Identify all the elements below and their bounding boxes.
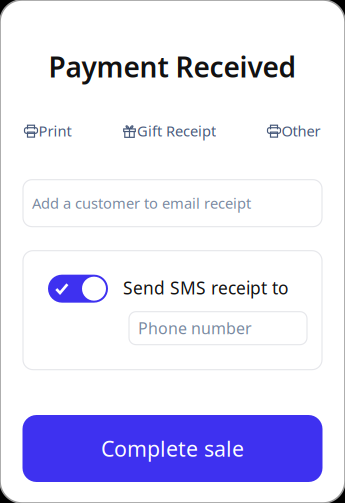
- staticText: Complete sale: [101, 434, 244, 463]
- staticText: Add a customer to email receipt: [32, 193, 251, 213]
- staticText: Print: [38, 121, 71, 141]
- button[interactable]: Gift Receipt: [123, 121, 216, 141]
- button[interactable]: Print: [24, 121, 71, 141]
- button[interactable]: Complete sale: [22, 415, 322, 482]
- staticText: Gift Receipt: [137, 121, 216, 141]
- staticText: Phone number: [138, 317, 252, 339]
- button[interactable]: Other: [267, 121, 320, 141]
- button[interactable]: Add a customer to email receipt: [23, 180, 322, 227]
- staticText: Payment Received: [48, 48, 296, 85]
- staticText: Send SMS receipt to: [123, 276, 288, 299]
- button[interactable]: Phone number: [129, 312, 307, 345]
- staticText: Other: [281, 121, 320, 141]
